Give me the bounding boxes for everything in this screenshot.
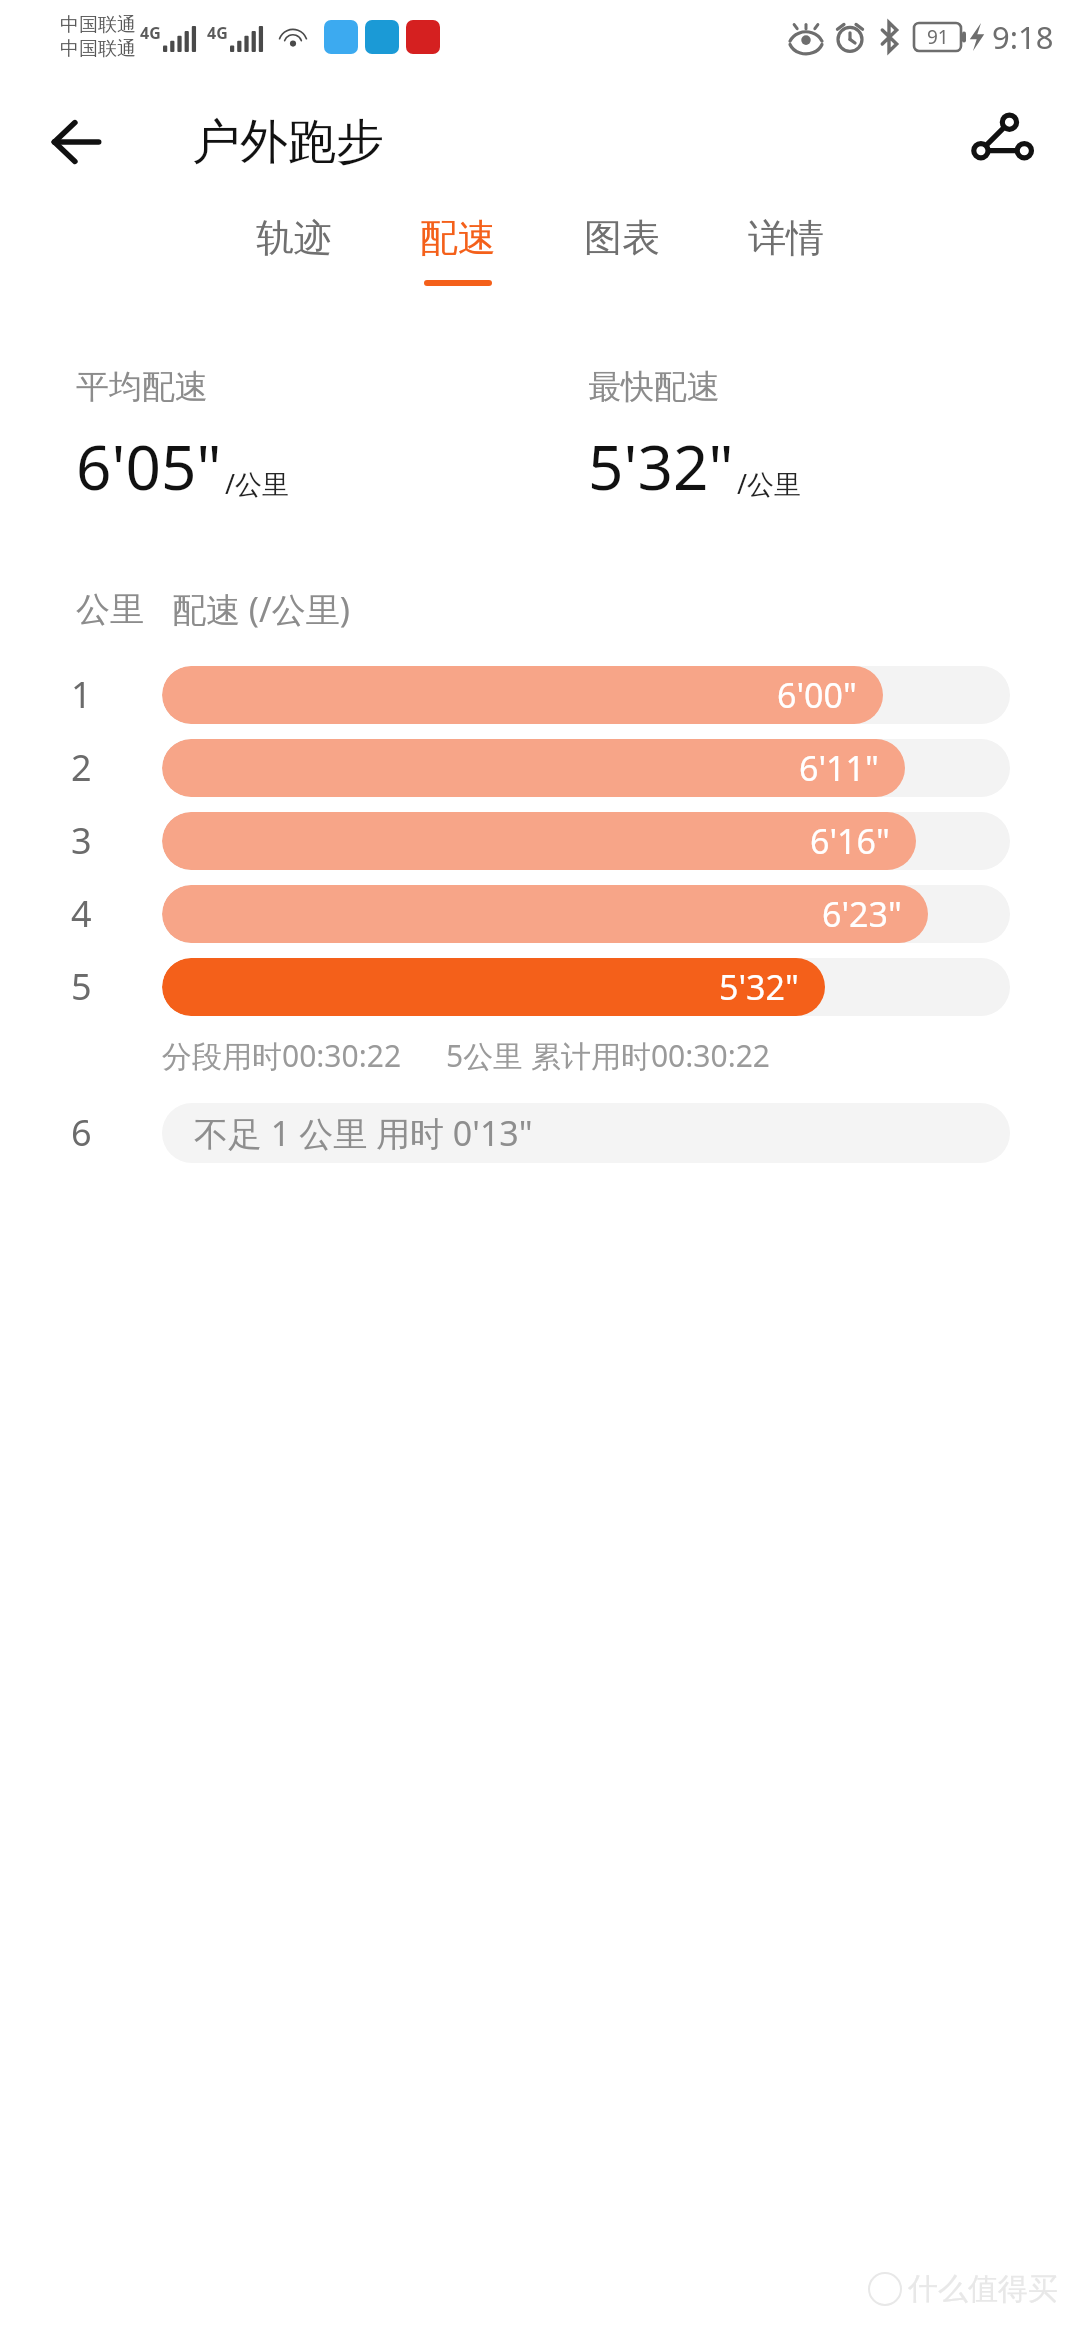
- button[interactable]: 6: [0, 1096, 1080, 1169]
- staticText: 配速: [420, 214, 496, 262]
- staticText: 9:18: [992, 16, 1054, 58]
- staticText: 分段用时00:30:22: [162, 1035, 402, 1076]
- staticText: /公里: [737, 465, 802, 502]
- staticText: 中国联通: [60, 37, 136, 61]
- staticText: 4G: [207, 22, 228, 44]
- staticText: 6: [71, 1108, 92, 1157]
- staticText: 户外跑步: [192, 112, 384, 172]
- button[interactable]: 5: [0, 950, 1080, 1023]
- button[interactable]: 轨迹: [250, 210, 338, 290]
- staticText: 中国联通: [60, 13, 136, 37]
- staticText: /公里: [225, 465, 290, 502]
- staticText: 6'23": [822, 891, 902, 937]
- staticText: 5'32": [719, 964, 799, 1010]
- button[interactable]: 1: [0, 658, 1080, 731]
- staticText: 最快配速: [588, 366, 720, 408]
- staticText: 91: [927, 24, 949, 50]
- staticText: 6'16": [810, 818, 890, 864]
- staticText: 平均配速: [76, 366, 208, 408]
- staticText: 4: [71, 889, 92, 938]
- staticText: 6'11": [799, 745, 879, 791]
- staticText: 配速 (/公里): [172, 586, 350, 632]
- staticText: 不足 1 公里 用时 0'13": [194, 1110, 533, 1156]
- staticText: 图表: [584, 214, 660, 262]
- staticText: 轨迹: [256, 214, 332, 262]
- staticText: 5'32": [588, 424, 734, 508]
- staticText: 什么值得买: [908, 2270, 1058, 2308]
- staticText: 5: [71, 962, 92, 1011]
- button[interactable]: 4: [0, 877, 1080, 950]
- staticText: 5公里 累计用时00:30:22: [446, 1035, 770, 1076]
- staticText: 6'05": [76, 424, 222, 508]
- button[interactable]: 3: [0, 804, 1080, 877]
- button[interactable]: 2: [0, 731, 1080, 804]
- staticText: 2: [71, 743, 92, 792]
- staticText: 4G: [140, 22, 161, 44]
- staticText: 详情: [748, 214, 824, 262]
- staticText: 3: [71, 816, 92, 865]
- button[interactable]: 详情: [742, 210, 830, 290]
- staticText: 公里: [76, 588, 144, 631]
- button[interactable]: 配速: [414, 210, 502, 290]
- staticText: 6'00": [777, 672, 857, 718]
- button[interactable]: 图表: [578, 210, 666, 290]
- button[interactable]: Share: [954, 94, 1050, 190]
- button[interactable]: Back: [28, 94, 124, 190]
- staticText: 1: [71, 670, 92, 719]
